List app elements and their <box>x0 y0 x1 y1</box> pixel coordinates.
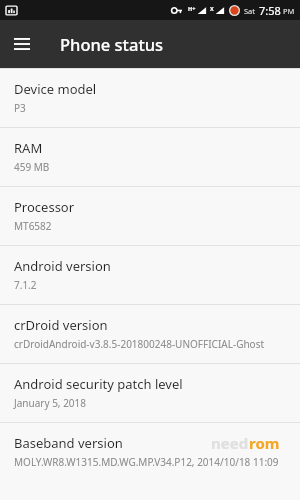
staticText: PM <box>283 6 295 16</box>
staticText: need <box>211 433 249 453</box>
staticText: 7:58 <box>259 3 281 18</box>
staticText: H+ <box>188 5 196 12</box>
button[interactable]: Baseband version <box>0 423 300 481</box>
button[interactable]: Open navigation menu <box>8 30 36 58</box>
staticText: rom <box>249 433 280 453</box>
staticText: Device model <box>14 80 97 98</box>
staticText: Android version <box>14 257 111 275</box>
button[interactable]: crDroid version <box>0 305 300 363</box>
staticText: crDroidAndroid-v3.8.5-201800248-UNOFFICI… <box>14 337 265 351</box>
button[interactable]: RAM <box>0 128 300 186</box>
button[interactable]: Android security patch level <box>0 364 300 422</box>
staticText: crDroid version <box>14 316 108 334</box>
staticText: Baseband version <box>14 434 123 452</box>
staticText: RAM <box>14 139 43 157</box>
staticText: Sat <box>244 6 256 16</box>
staticText: Processor <box>14 198 75 216</box>
staticText: Android security patch level <box>14 375 183 393</box>
staticText: P3 <box>14 101 26 115</box>
button[interactable]: Android version <box>0 246 300 304</box>
staticText: MOLY.WR8.W1315.MD.WG.MP.V34.P12, 2014/10… <box>14 455 279 469</box>
button[interactable]: Device model <box>0 69 300 127</box>
staticText: January 5, 2018 <box>14 396 87 410</box>
staticText: X <box>210 5 214 12</box>
staticText: 459 MB <box>14 160 50 174</box>
staticText: MT6582 <box>14 219 52 233</box>
button[interactable]: Processor <box>0 187 300 245</box>
staticText: 7.1.2 <box>14 278 37 292</box>
staticText: Phone status <box>60 33 164 55</box>
